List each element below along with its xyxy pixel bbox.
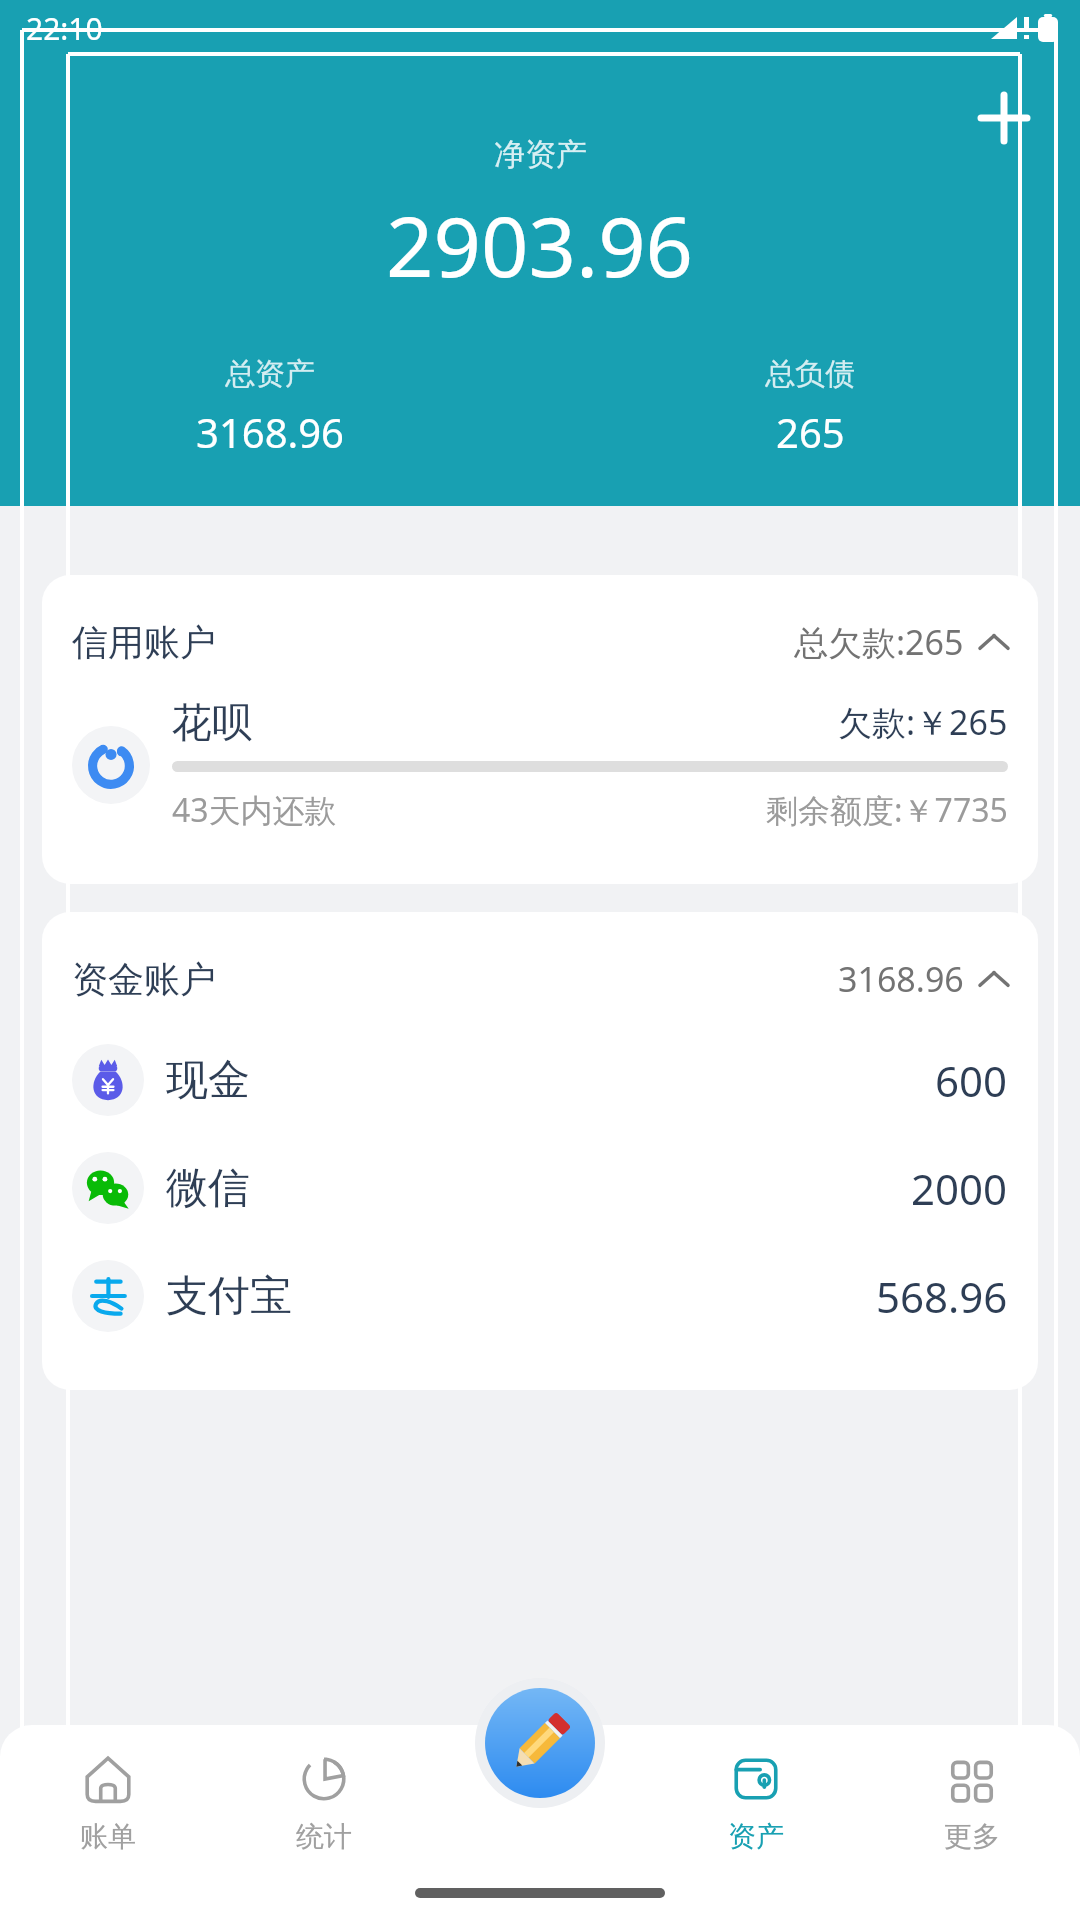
button[interactable]: 更多 [864,1725,1080,1920]
staticText: 资产 [728,1819,784,1854]
staticText: 统计 [296,1819,352,1854]
button[interactable]: Add record [475,1678,605,1808]
button[interactable]: Add account [968,82,1040,154]
staticText: 22:10 [26,8,103,49]
staticText: 3168.96 [838,956,964,1002]
staticText: 支付宝 [166,1270,292,1323]
button[interactable]: 信用账户 [42,575,1038,884]
button[interactable]: 资产 [648,1725,864,1920]
staticText: 总资产 [225,355,315,393]
staticText: 43天内还款 [172,788,337,832]
staticText: 微信 [166,1162,250,1215]
staticText: 信用账户 [72,620,216,665]
button[interactable]: 现金 [42,1026,1038,1134]
button[interactable]: 账单 [0,1725,216,1920]
button[interactable]: 资金账户 [42,912,1038,1390]
staticText: 2000 [911,1160,1008,1217]
staticText: 账单 [80,1819,136,1854]
staticText: 现金 [166,1054,250,1107]
button[interactable]: 支付宝 [42,1242,1038,1350]
button[interactable]: 微信 [42,1134,1038,1242]
staticText: 资金账户 [72,957,216,1002]
staticText: 净资产 [494,135,587,174]
staticText: 265 [776,405,845,459]
staticText: 3168.96 [196,405,344,459]
staticText: 剩余额度:￥7735 [766,788,1008,832]
button[interactable]: 统计 [216,1725,432,1920]
staticText: 总欠款:265 [794,619,964,665]
staticText: 更多 [944,1819,1000,1854]
staticText: 600 [935,1052,1008,1109]
staticText: 总负债 [765,355,855,393]
staticText: 花呗 [172,697,252,747]
staticText: 568.96 [876,1268,1008,1325]
staticText: 欠款:￥265 [838,699,1008,745]
staticText: 2903.96 [386,188,694,301]
